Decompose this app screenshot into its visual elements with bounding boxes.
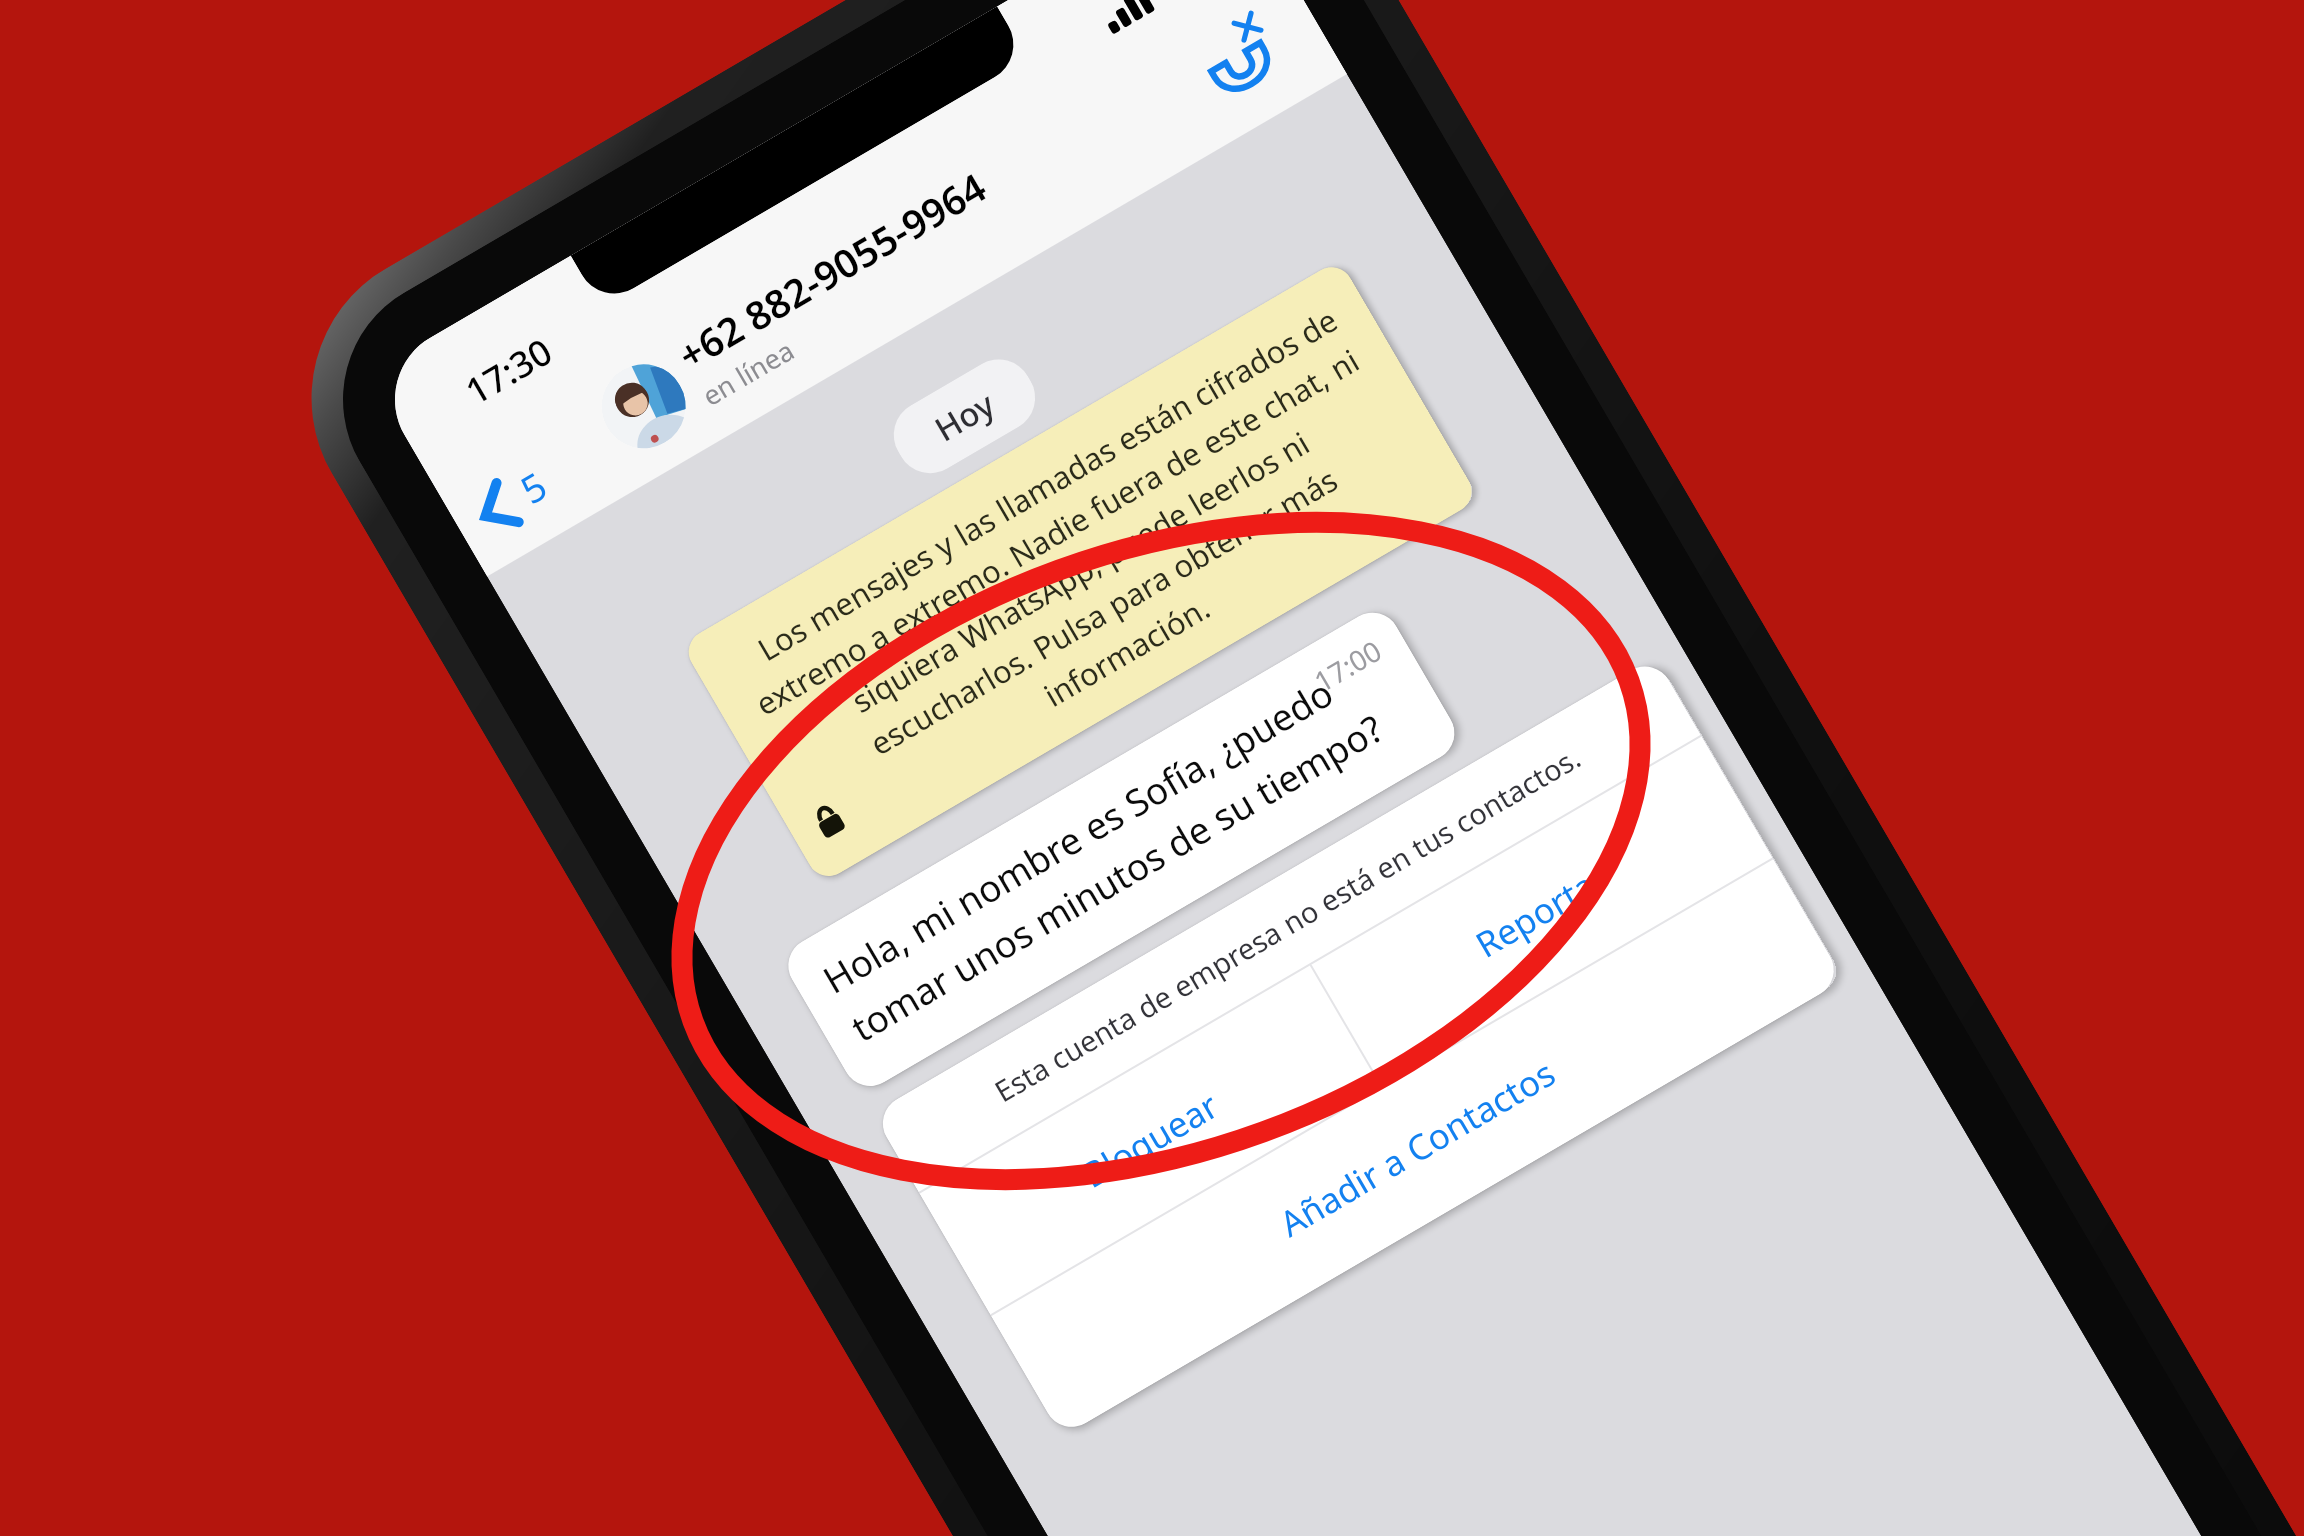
staticText: +62 882-9055-9964 [668,160,995,381]
staticText: Hoy [926,381,1002,451]
button[interactable]: Add call [1182,0,1300,116]
button[interactable]: Reportar [1311,737,1772,1085]
button[interactable]: Back, 5 unread [468,456,557,542]
staticText: 5 [511,459,556,515]
staticText: 17:30 [456,326,561,416]
staticText: en línea [695,331,800,414]
button[interactable]: Bloquear [919,966,1380,1314]
staticText: Hola, mi nombre es Sofía, ¿puedo tomar u… [813,634,1425,1053]
button[interactable]: Hola, mi nombre es Sofía, ¿puedo tomar u… [778,602,1465,1096]
button[interactable]: Los mensajes y las llamadas están cifrad… [681,259,1480,884]
staticText: 17:00 [1307,631,1388,700]
staticText: Los mensajes y las llamadas están cifrad… [716,295,1444,848]
staticText: Añadir a Contactos [1271,1049,1564,1248]
staticText: Bloquear [1073,1081,1227,1199]
button[interactable]: Hoy [881,347,1048,486]
button[interactable]: Añadir a Contactos [991,859,1844,1437]
staticText: Esta cuenta de empresa no está en tus co… [987,737,1587,1110]
staticText: Reportar [1467,853,1617,969]
